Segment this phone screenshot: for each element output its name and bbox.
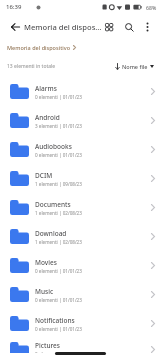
staticText: Android [35, 113, 60, 122]
staticText: Audiobooks [35, 142, 72, 151]
button[interactable]: Documents [0, 193, 161, 222]
button[interactable]: DCIM [0, 164, 161, 193]
staticText: Nome file [122, 63, 148, 70]
staticText: Alarms [35, 84, 57, 93]
button[interactable]: Memoria del dispositivo [7, 40, 161, 55]
staticText: Movies [35, 258, 57, 267]
staticText: 1 elementi | 02/08/23 [35, 239, 82, 245]
button[interactable]: Pictures [0, 338, 161, 360]
staticText: Notifications [35, 316, 75, 325]
staticText: 0 elementi | 01/01/23 [35, 94, 82, 100]
staticText: 0 elementi | 01/01/23 [35, 297, 82, 303]
button[interactable]: Music [0, 280, 161, 309]
button[interactable] [102, 20, 116, 34]
staticText: 0 elementi | 01/01/23 [35, 326, 82, 332]
button[interactable] [122, 20, 136, 34]
staticText: Memoria del disposit... [24, 22, 102, 32]
staticText: 1 elementi | 02/08/23 [35, 210, 82, 216]
staticText: 0 elementi | 01/01/23 [35, 268, 82, 274]
staticText: Pictures [35, 341, 60, 350]
staticText: 0 elementi | 01/01/23 [35, 152, 82, 158]
button[interactable]: Download [0, 222, 161, 251]
staticText: 68% [146, 4, 157, 11]
staticText: DCIM [35, 171, 53, 180]
button[interactable]: Alarms [0, 77, 161, 106]
staticText: 16:39 [6, 3, 22, 11]
staticText: 13 elementi in totale [7, 63, 56, 70]
button[interactable]: Audiobooks [0, 135, 161, 164]
button[interactable] [9, 21, 21, 33]
staticText: 3 elementi | 01/01/23 [35, 123, 82, 129]
button[interactable] [141, 21, 153, 33]
staticText: Memoria del dispositivo [7, 44, 70, 51]
button[interactable]: Notifications [0, 309, 161, 338]
staticText: Music [35, 287, 54, 296]
button[interactable]: Movies [0, 251, 161, 280]
button[interactable]: Nome file [115, 63, 154, 70]
staticText: Download [35, 229, 67, 238]
staticText: 1 elementi | 09/08/23 [35, 181, 82, 187]
button[interactable]: Android [0, 106, 161, 135]
staticText: Documents [35, 200, 71, 209]
staticText: 0 elementi | 01/01/23 [35, 351, 82, 357]
